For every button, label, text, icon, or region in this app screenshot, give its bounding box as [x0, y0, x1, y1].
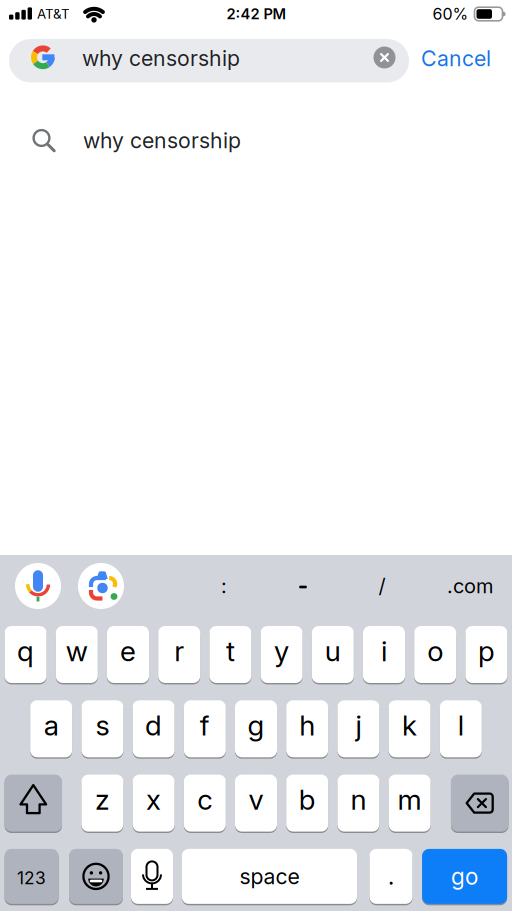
button[interactable]: h	[286, 699, 328, 759]
button[interactable]: Dictate	[131, 849, 173, 904]
staticText: Cancel	[421, 46, 491, 71]
button[interactable]: e	[107, 624, 149, 684]
staticText: p	[478, 634, 495, 667]
button[interactable]: k	[389, 699, 431, 759]
button[interactable]: o	[414, 624, 456, 684]
button[interactable]: v	[235, 773, 277, 833]
staticText: v	[248, 783, 263, 816]
button[interactable]: c	[184, 773, 226, 833]
staticText: why censorship	[83, 128, 241, 153]
staticText: b	[299, 783, 316, 816]
staticText: j	[355, 709, 361, 742]
staticText: why censorship	[82, 46, 240, 71]
button[interactable]: l	[440, 699, 482, 759]
button[interactable]: why censorship	[0, 117, 512, 165]
staticText: w	[66, 634, 88, 667]
button[interactable]: space	[182, 847, 357, 905]
staticText: c	[197, 783, 212, 816]
staticText: d	[145, 709, 162, 742]
staticText: g	[247, 709, 264, 742]
staticText: 60%	[432, 5, 468, 23]
staticText: e	[120, 634, 136, 667]
button[interactable]: d	[133, 699, 175, 759]
staticText: .com	[447, 574, 493, 598]
staticText: u	[325, 634, 341, 667]
button[interactable]: :	[204, 566, 244, 606]
button[interactable]: a	[30, 699, 72, 759]
staticText: .	[388, 863, 394, 890]
button[interactable]: Google Lens	[78, 563, 124, 609]
button[interactable]: m	[389, 773, 431, 833]
staticText: 123	[17, 868, 46, 888]
button[interactable]: t	[209, 624, 251, 684]
staticText: l	[458, 709, 464, 742]
staticText: f	[200, 709, 210, 742]
button[interactable]: Emoji	[69, 849, 123, 904]
staticText: n	[350, 783, 366, 816]
staticText: /	[378, 574, 385, 598]
button[interactable]: Delete	[451, 775, 508, 832]
button[interactable]: Voice search	[15, 563, 61, 609]
staticText: h	[299, 709, 315, 742]
button[interactable]: go	[422, 847, 507, 905]
button[interactable]: Cancel	[421, 46, 491, 71]
button[interactable]: Shift	[4, 775, 62, 832]
staticText: go	[451, 863, 478, 890]
staticText: i	[381, 634, 387, 667]
button[interactable]: r	[158, 624, 200, 684]
staticText: AT&T	[37, 6, 70, 22]
staticText: t	[226, 634, 235, 667]
staticText: z	[95, 783, 110, 816]
button[interactable]: u	[312, 624, 354, 684]
button[interactable]: s	[81, 699, 123, 759]
button[interactable]: Clear text	[373, 46, 395, 68]
staticText: o	[427, 634, 443, 667]
button[interactable]: p	[465, 624, 507, 684]
staticText: 2:42 PM	[226, 5, 286, 23]
button[interactable]: -	[283, 567, 323, 607]
button[interactable]: .	[369, 847, 412, 905]
staticText: s	[95, 709, 109, 742]
button[interactable]: i	[363, 624, 405, 684]
staticText: a	[44, 709, 59, 742]
button[interactable]: z	[81, 773, 123, 833]
button[interactable]: b	[286, 773, 328, 833]
button[interactable]: /	[362, 566, 402, 606]
button[interactable]: w	[56, 624, 98, 684]
button[interactable]: g	[235, 699, 277, 759]
staticText: r	[174, 634, 184, 667]
button[interactable]: n	[337, 773, 379, 833]
staticText: m	[398, 783, 422, 816]
button[interactable]: f	[184, 699, 226, 759]
button[interactable]: .com	[435, 566, 505, 606]
button[interactable]: j	[337, 699, 379, 759]
button[interactable]: q	[5, 624, 47, 684]
staticText: :	[221, 574, 227, 598]
button[interactable]: y	[261, 624, 303, 684]
staticText: k	[402, 709, 417, 742]
staticText: y	[274, 634, 289, 667]
button[interactable]: 123	[5, 847, 59, 905]
staticText: q	[17, 634, 34, 667]
button[interactable]: x	[133, 773, 175, 833]
staticText: x	[146, 783, 161, 816]
staticText: space	[239, 864, 299, 889]
